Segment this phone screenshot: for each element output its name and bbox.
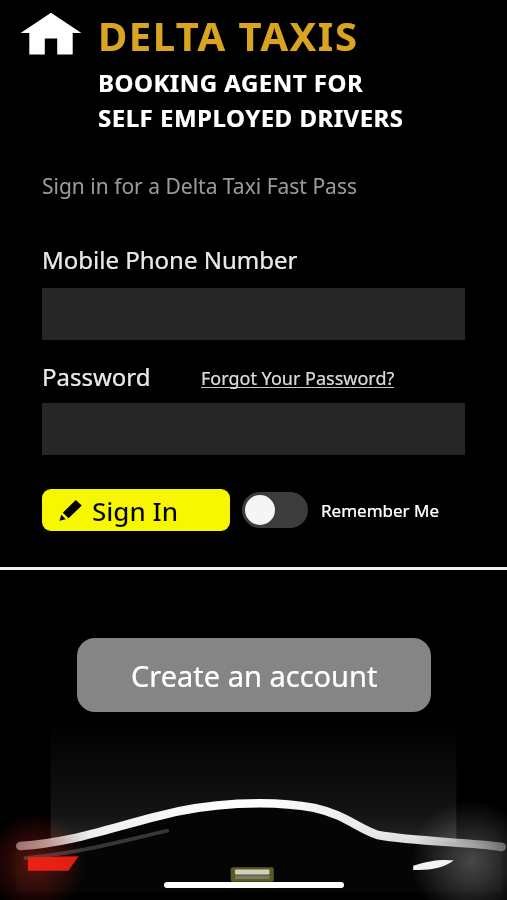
staticText: BOOKING AGENT FOR — [98, 66, 364, 99]
button[interactable]: Forgot Your Password? — [201, 366, 395, 393]
staticText: SELF EMPLOYED DRIVERS — [98, 101, 404, 134]
button[interactable]: Remember Me toggle — [242, 492, 308, 528]
staticText: Remember Me — [321, 499, 440, 522]
staticText: Password — [42, 360, 151, 393]
button[interactable]: Create an account — [77, 638, 431, 712]
staticText: Mobile Phone Number — [42, 243, 298, 276]
staticText: Sign In — [92, 493, 179, 528]
staticText: DELTA TAXIS — [98, 8, 359, 62]
staticText: Forgot Your Password? — [201, 366, 395, 391]
staticText: Create an account — [131, 656, 378, 695]
button[interactable]: Sign In — [42, 489, 230, 531]
staticText: Sign in for a Delta Taxi Fast Pass — [42, 172, 358, 201]
